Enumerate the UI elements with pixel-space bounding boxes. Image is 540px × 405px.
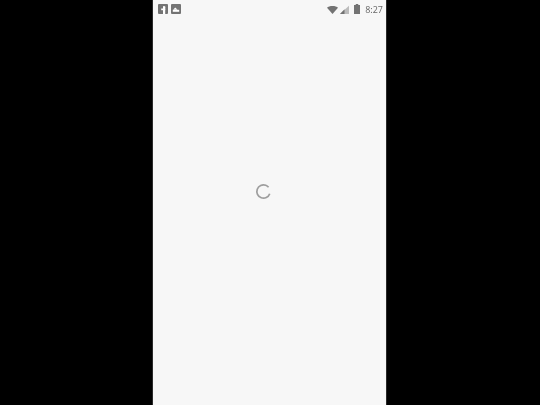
other: Battery	[354, 4, 360, 14]
other: Screenshot notification	[171, 4, 181, 14]
staticText: 8:27	[365, 3, 383, 15]
other: Cellular signal	[340, 5, 349, 14]
other: Wi-Fi	[327, 5, 338, 14]
other: Facebook notification	[158, 4, 168, 14]
